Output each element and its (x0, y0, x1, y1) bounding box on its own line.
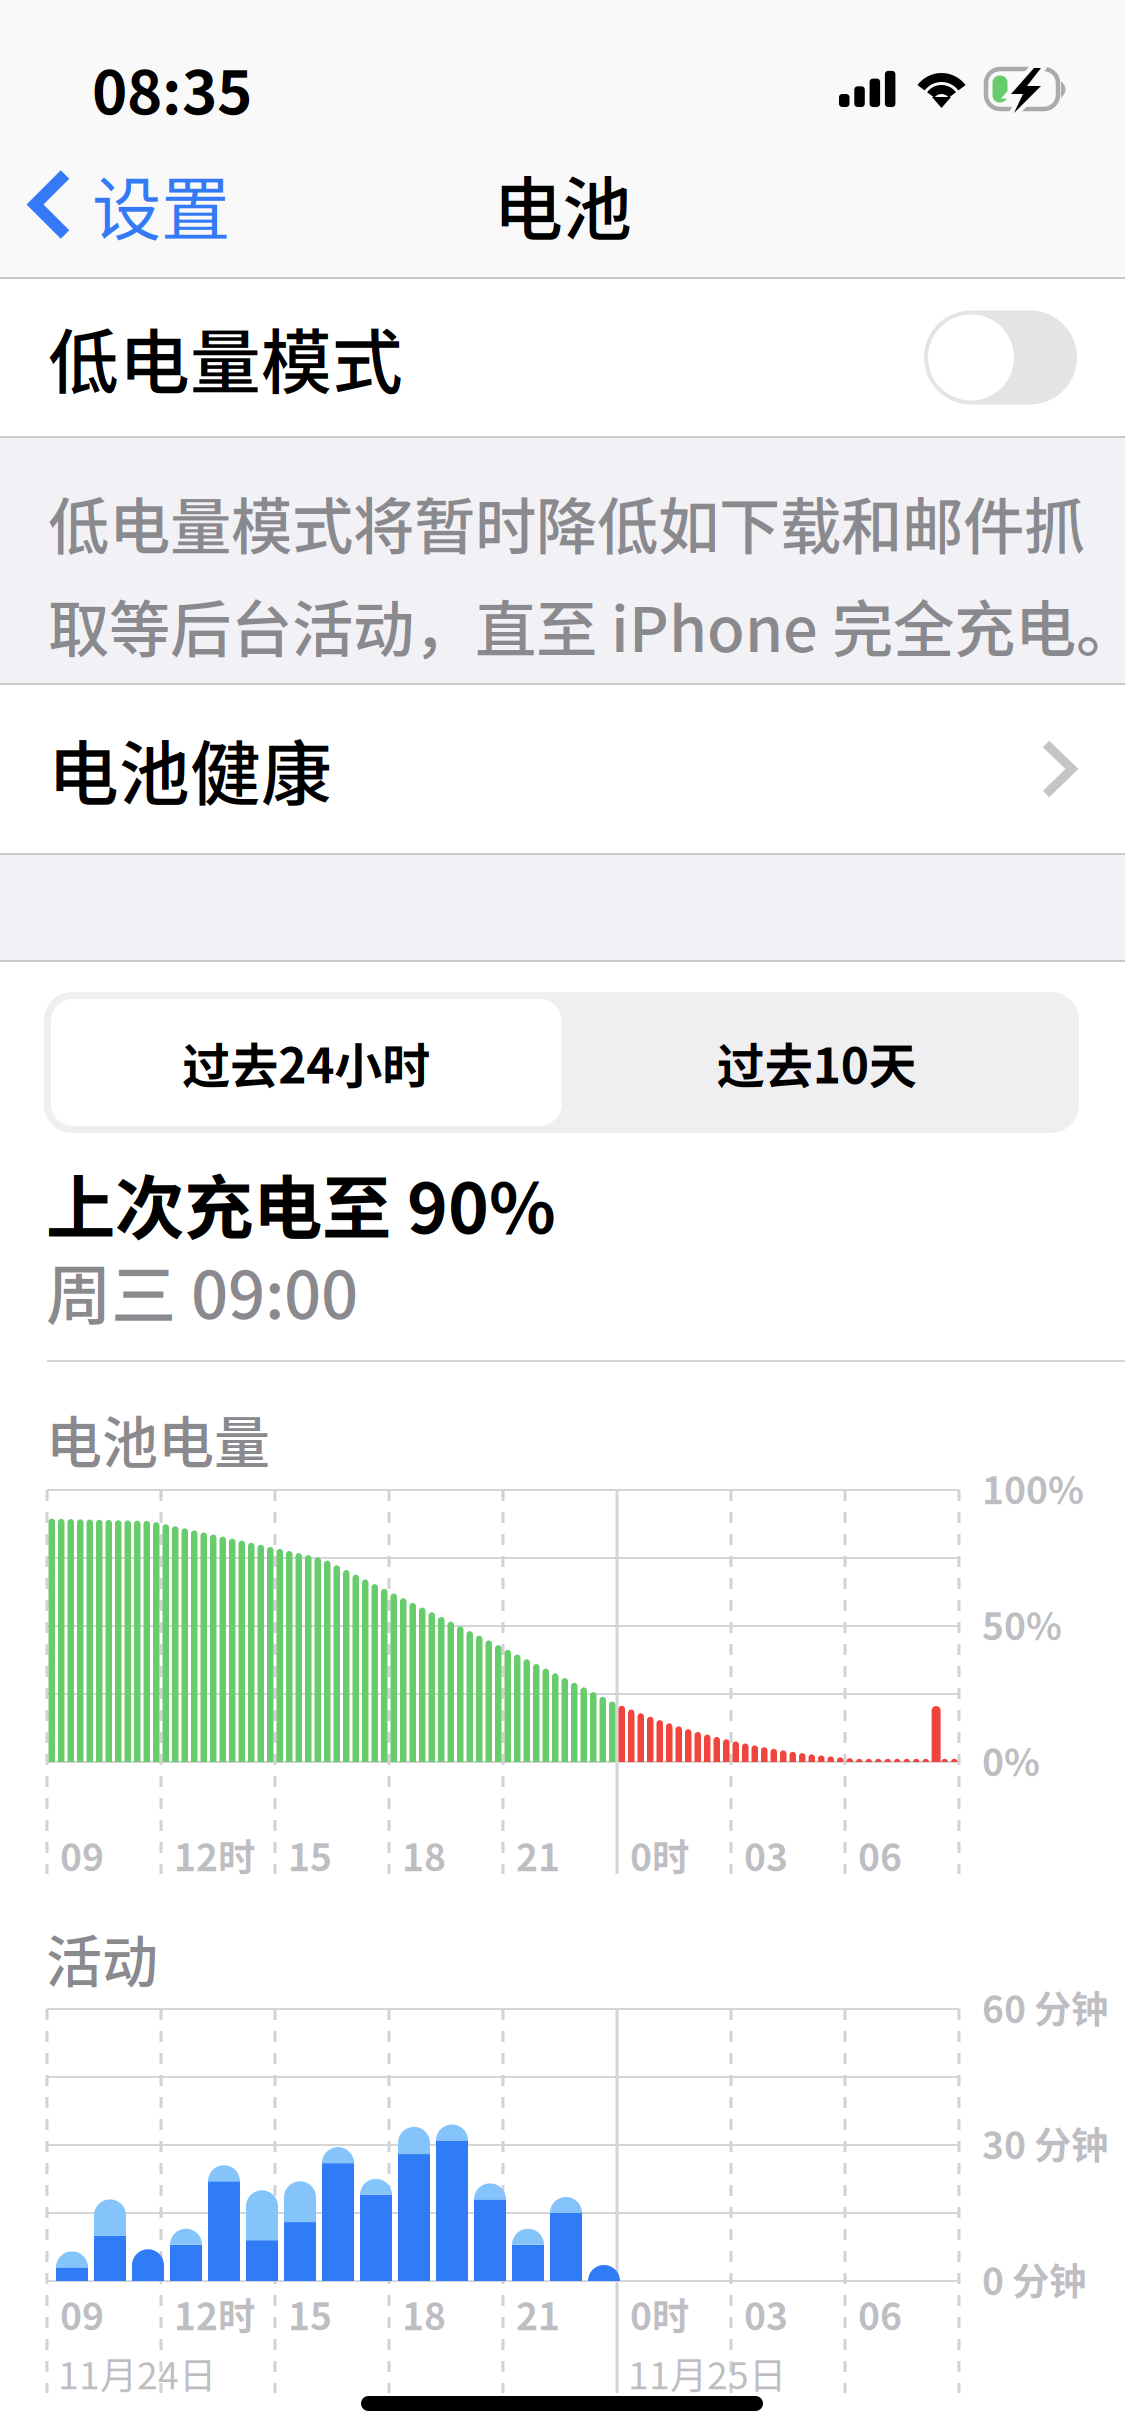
staticText: 18 (402, 1828, 446, 1882)
button[interactable]: 过去10天 (561, 999, 1072, 1126)
button[interactable]: 设置 (4, 133, 260, 275)
staticText: 上次充电至 90% (46, 1153, 556, 1253)
staticText: 06 (858, 1828, 902, 1882)
staticText: 50% (982, 1597, 1062, 1651)
staticText: 15 (288, 2287, 332, 2341)
staticText: 低电量模式将暂时降低如下载和邮件抓 (48, 478, 1085, 567)
staticText: 60 分钟 (982, 1980, 1108, 2034)
staticText: 活动 (46, 1917, 158, 1998)
staticText: 取等后台活动，直至 iPhone 完全充电。 (48, 581, 1125, 670)
staticText: 100% (982, 1461, 1084, 1515)
staticText: 11月24日 (58, 2346, 216, 2400)
staticText: 过去10天 (717, 1028, 917, 1097)
staticText: 06 (858, 2287, 902, 2341)
staticText: 电池健康 (48, 718, 332, 820)
staticText: 过去24小时 (182, 1028, 430, 1097)
button[interactable]: 电池健康 (0, 685, 1125, 853)
staticText: 0% (982, 1733, 1040, 1787)
staticText: 设置 (92, 154, 230, 255)
staticText: 电池 (493, 154, 631, 255)
staticText: 0时 (630, 1828, 689, 1882)
staticText: 03 (744, 2287, 788, 2341)
staticText: 12时 (174, 2287, 255, 2341)
staticText: 09 (60, 2287, 104, 2341)
staticText: 21 (516, 1828, 560, 1882)
staticText: 15 (288, 1828, 332, 1882)
staticText: 0时 (630, 2287, 689, 2341)
staticText: 电池电量 (46, 1398, 270, 1479)
staticText: 09 (60, 1828, 104, 1882)
staticText: 21 (516, 2287, 560, 2341)
staticText: 03 (744, 1828, 788, 1882)
staticText: 08:35 (92, 45, 252, 131)
staticText: 18 (402, 2287, 446, 2341)
staticText: 30 分钟 (982, 2116, 1108, 2170)
staticText: 低电量模式 (48, 306, 403, 409)
button[interactable]: 低电量模式开关 (924, 310, 1077, 404)
staticText: 11月25日 (628, 2346, 786, 2400)
staticText: 周三 09:00 (46, 1243, 358, 1338)
button[interactable]: 过去24小时 (51, 999, 561, 1126)
staticText: 12时 (174, 1828, 255, 1882)
staticText: 0 分钟 (982, 2252, 1086, 2306)
